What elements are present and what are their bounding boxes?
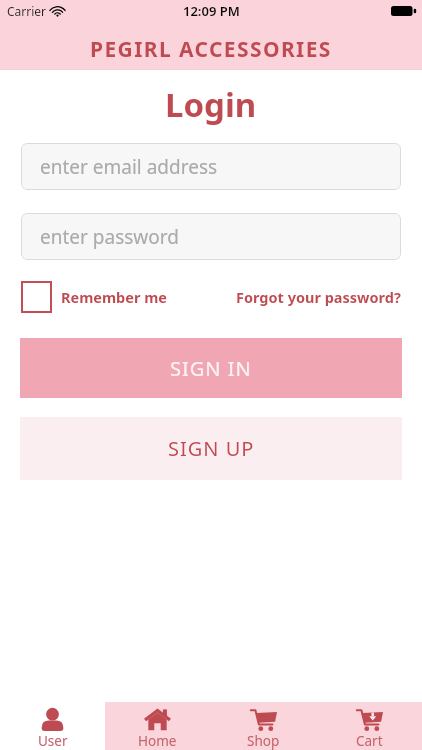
staticText: SIGN IN — [170, 355, 252, 382]
button[interactable]: SIGN UP — [20, 417, 402, 480]
button[interactable]: Cart — [316, 702, 422, 750]
staticText: Cart — [356, 732, 383, 750]
staticText: PEGIRL ACCESSORIES — [90, 35, 332, 64]
button[interactable]: Home — [105, 702, 210, 750]
staticText: Shop — [247, 732, 280, 750]
staticText: Login — [165, 82, 257, 127]
button[interactable]: enter password — [21, 213, 401, 260]
staticText: 12:09 PM — [183, 2, 240, 20]
staticText: SIGN UP — [168, 435, 255, 462]
staticText: Home — [138, 732, 177, 750]
button[interactable]: SIGN IN — [20, 338, 402, 398]
staticText: Carrier — [7, 3, 47, 19]
button[interactable]: enter email address — [21, 143, 401, 190]
button[interactable]: Shop — [210, 702, 316, 750]
staticText: Remember me — [61, 287, 167, 307]
staticText: enter email address — [40, 154, 218, 180]
button[interactable]: Forgot your password? — [236, 287, 401, 307]
button[interactable]: User — [0, 702, 105, 750]
staticText: User — [38, 732, 68, 750]
button[interactable] — [21, 281, 52, 313]
staticText: enter password — [40, 224, 179, 250]
